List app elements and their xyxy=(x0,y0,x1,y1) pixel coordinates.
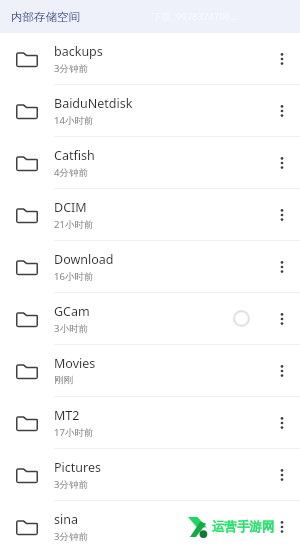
staticText: DCIM xyxy=(54,199,87,216)
staticText: GCam xyxy=(54,303,90,320)
staticText: Download xyxy=(54,251,114,268)
button[interactable]: Download xyxy=(0,241,300,292)
button[interactable]: More options xyxy=(264,33,300,84)
staticText: BaiduNetdisk xyxy=(54,95,133,112)
staticText: 21小时前 xyxy=(54,218,94,231)
staticText: 17小时前 xyxy=(54,426,94,439)
staticText: 3分钟前 xyxy=(54,478,88,491)
staticText: Catfish xyxy=(54,147,95,164)
staticText: 4分钟前 xyxy=(54,166,88,179)
button[interactable]: More options xyxy=(264,137,300,188)
staticText: 刚刚 xyxy=(54,374,73,386)
button[interactable]: More options xyxy=(264,501,300,552)
button[interactable]: More options xyxy=(264,85,300,136)
staticText: 3分钟前 xyxy=(54,530,88,543)
button[interactable]: DCIM xyxy=(0,189,300,240)
button[interactable]: More options xyxy=(264,189,300,240)
button[interactable]: GCam xyxy=(0,293,300,344)
staticText: 下载 9978374709… xyxy=(152,10,238,23)
button[interactable]: MT2 xyxy=(0,397,300,448)
staticText: 内部存储空间 xyxy=(11,10,80,24)
button[interactable]: Movies xyxy=(0,345,300,396)
button[interactable]: Pictures xyxy=(0,449,300,500)
staticText: 3分钟前 xyxy=(54,62,88,75)
button[interactable]: More options xyxy=(264,293,300,344)
staticText: 3小时前 xyxy=(54,322,88,335)
button[interactable]: backups xyxy=(0,33,300,84)
staticText: 16小时前 xyxy=(54,270,94,283)
button[interactable]: More options xyxy=(264,345,300,396)
button[interactable]: sina xyxy=(0,501,300,552)
staticText: Movies xyxy=(54,355,96,372)
staticText: 14小时前 xyxy=(54,114,94,127)
button[interactable]: More options xyxy=(264,397,300,448)
staticText: MT2 xyxy=(54,407,80,424)
button[interactable]: BaiduNetdisk xyxy=(0,85,300,136)
button[interactable]: More options xyxy=(264,449,300,500)
staticText: Pictures xyxy=(54,459,101,476)
staticText: sina xyxy=(54,511,78,528)
button[interactable]: Catfish xyxy=(0,137,300,188)
staticText: 运营手游网 xyxy=(212,519,275,535)
button[interactable]: 内部存储空间 xyxy=(10,7,81,27)
staticText: backups xyxy=(54,43,103,60)
button[interactable]: More options xyxy=(264,241,300,292)
